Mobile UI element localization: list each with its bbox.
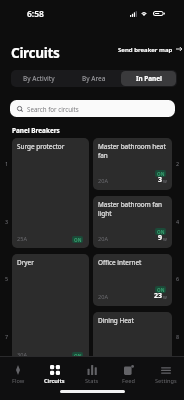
staticText: Feed — [122, 377, 135, 385]
staticText: In Panel — [136, 74, 162, 83]
staticText: Dining Heat — [98, 316, 166, 325]
button[interactable]: Dining Heat — [93, 312, 172, 364]
staticText: 3 — [158, 175, 163, 185]
button[interactable]: Stats — [73, 357, 110, 400]
staticText: 7 — [5, 333, 9, 340]
staticText: 4 — [176, 218, 180, 225]
staticText: 6:58 — [27, 8, 44, 20]
staticText: Circuits — [11, 43, 60, 62]
staticText: w — [163, 294, 167, 301]
staticText: Stats — [85, 377, 99, 385]
staticText: ON — [157, 287, 165, 293]
staticText: 30A — [17, 351, 27, 359]
staticText: w — [163, 236, 167, 243]
staticText: 2 — [176, 160, 180, 167]
staticText: Dryer — [17, 258, 85, 267]
staticText: 3 — [5, 218, 9, 225]
button[interactable]: Send breaker map — [113, 41, 184, 57]
button[interactable]: By Area — [66, 71, 121, 86]
staticText: Search for circuits — [27, 105, 79, 113]
staticText: By Area — [82, 74, 106, 83]
button[interactable]: By Activity — [12, 71, 66, 86]
staticText: 9 — [158, 233, 163, 243]
staticText: Flow — [12, 377, 25, 385]
staticText: Master bathroom fan light — [98, 200, 166, 218]
button[interactable]: Office internet — [93, 254, 172, 306]
staticText: 20A — [98, 293, 108, 301]
staticText: 23 — [154, 291, 163, 301]
button[interactable]: Master bathroom fan light — [93, 196, 172, 248]
button[interactable]: Feed — [110, 357, 147, 400]
staticText: 6 — [176, 275, 180, 282]
staticText: 20A — [98, 235, 108, 243]
staticText: w — [163, 178, 167, 185]
staticText: 8 — [176, 333, 180, 340]
staticText: Circuits — [44, 377, 65, 385]
staticText: 25A — [17, 235, 27, 243]
button[interactable]: Search for circuits — [10, 100, 175, 117]
staticText: ON — [74, 353, 82, 359]
button[interactable]: Surge protector — [12, 138, 89, 248]
button[interactable]: Flow — [0, 357, 36, 400]
button[interactable]: Circuits — [36, 357, 73, 400]
staticText: Settings — [155, 377, 177, 385]
button[interactable]: Settings — [147, 357, 184, 400]
staticText: Panel Breakers — [12, 126, 60, 135]
button[interactable]: Master bathroom heat fan — [93, 138, 172, 190]
staticText: ON — [157, 171, 165, 177]
staticText: Master bathroom heat fan — [98, 142, 166, 160]
staticText: Office internet — [98, 258, 166, 267]
staticText: Surge protector — [17, 142, 85, 151]
staticText: 5 — [5, 275, 9, 282]
staticText: Send breaker map — [118, 45, 173, 53]
staticText: 20A — [98, 177, 108, 185]
button[interactable]: Dryer — [12, 254, 89, 364]
staticText: 1 — [5, 160, 9, 167]
staticText: ON — [157, 229, 165, 235]
button[interactable]: In Panel — [121, 71, 176, 86]
staticText: By Activity — [23, 74, 55, 83]
staticText: ON — [74, 237, 82, 243]
